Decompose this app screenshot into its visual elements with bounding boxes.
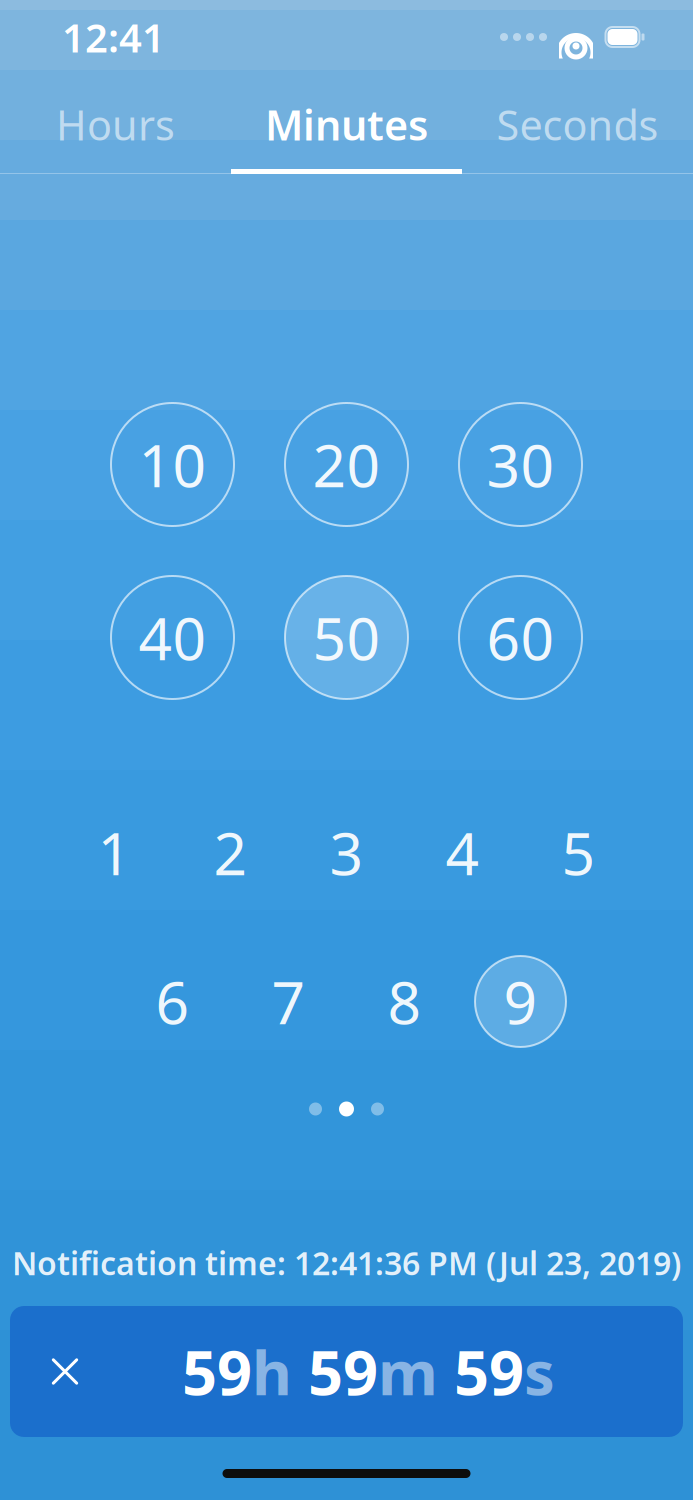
button[interactable]: Hours xyxy=(0,74,231,174)
staticText: h xyxy=(252,1331,292,1412)
button[interactable]: 1 xyxy=(69,807,160,898)
staticText: m xyxy=(378,1331,438,1412)
button[interactable]: 59 xyxy=(10,1306,683,1437)
button[interactable]: 6 xyxy=(127,956,218,1047)
button[interactable]: 60 xyxy=(459,576,582,699)
button[interactable]: 8 xyxy=(359,956,450,1047)
staticText: 2 xyxy=(213,813,247,891)
staticText: Minutes xyxy=(265,97,428,152)
staticText: 8 xyxy=(387,962,421,1040)
staticText: 7 xyxy=(271,962,305,1040)
staticText: 59 xyxy=(454,1331,524,1412)
staticText: 20 xyxy=(312,425,380,503)
staticText: 6 xyxy=(155,962,189,1040)
button[interactable]: 3 xyxy=(301,807,392,898)
staticText: Hours xyxy=(56,97,175,152)
staticText: 40 xyxy=(138,598,206,676)
staticText: 9 xyxy=(503,962,537,1040)
button[interactable]: 2 xyxy=(185,807,276,898)
button[interactable]: 5 xyxy=(533,807,624,898)
staticText: 3 xyxy=(329,813,363,891)
staticText: 5 xyxy=(561,813,595,891)
button[interactable]: 20 xyxy=(285,403,408,526)
button[interactable]: 7 xyxy=(243,956,334,1047)
staticText: s xyxy=(524,1331,555,1412)
staticText: 10 xyxy=(138,425,206,503)
staticText: 30 xyxy=(486,425,554,503)
staticText: 59 xyxy=(182,1331,252,1412)
staticText: 60 xyxy=(486,598,554,676)
staticText: 1 xyxy=(97,813,131,891)
button[interactable]: Cancel timer xyxy=(10,1306,120,1437)
staticText: 50 xyxy=(312,598,380,676)
staticText: Notification time: 12:41:36 PM (Jul 23, … xyxy=(12,1241,681,1284)
button[interactable]: 4 xyxy=(417,807,508,898)
staticText: 59 xyxy=(308,1331,378,1412)
button[interactable]: 9 xyxy=(475,956,566,1047)
button[interactable]: 40 xyxy=(111,576,234,699)
button[interactable]: 10 xyxy=(111,403,234,526)
button[interactable]: Minutes xyxy=(231,74,462,174)
staticText: Seconds xyxy=(496,97,658,152)
staticText: 12:41 xyxy=(62,10,165,63)
staticText: 4 xyxy=(445,813,479,891)
button[interactable]: 30 xyxy=(459,403,582,526)
button[interactable]: 50 xyxy=(285,576,408,699)
button[interactable]: Seconds xyxy=(462,74,693,174)
